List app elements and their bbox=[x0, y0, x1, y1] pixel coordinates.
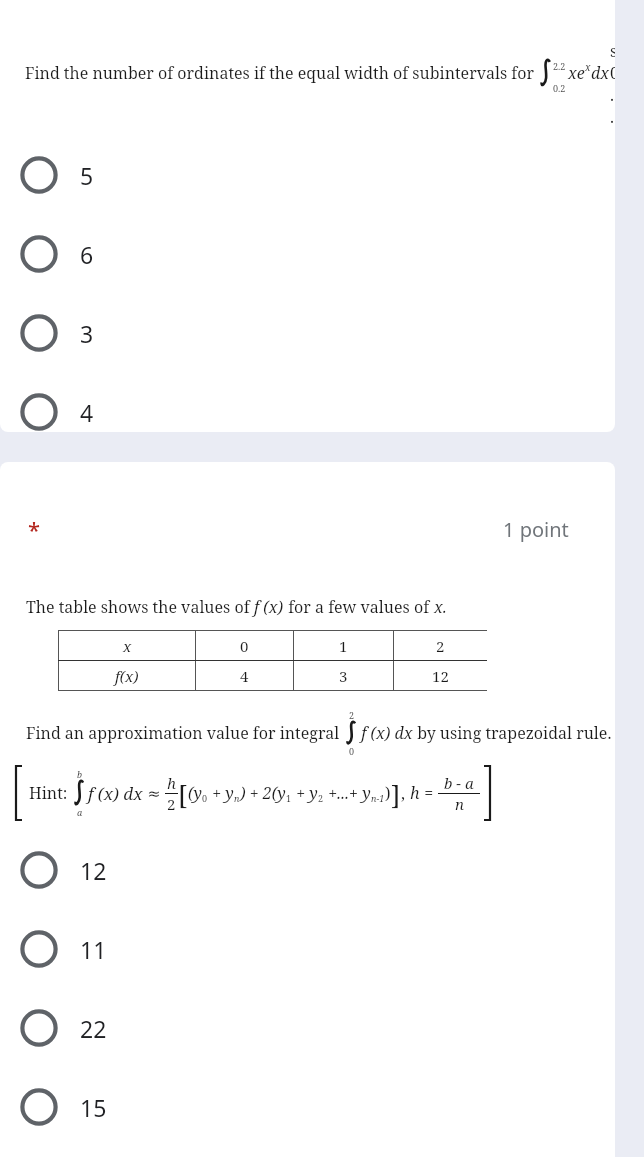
staticText: * bbox=[28, 514, 41, 544]
staticText: h bbox=[410, 782, 420, 804]
staticText: 1 bbox=[339, 636, 348, 656]
staticText: 1 bbox=[286, 792, 292, 804]
staticText: 11 bbox=[80, 934, 107, 965]
staticText: x bbox=[585, 60, 591, 74]
button[interactable]: 11 bbox=[0, 889, 615, 968]
staticText: dx bbox=[591, 62, 610, 84]
staticText: b - a bbox=[444, 773, 474, 793]
staticText: ) bbox=[385, 782, 391, 804]
staticText: 1 point bbox=[503, 516, 569, 543]
staticText: f (x) dx bbox=[357, 722, 413, 744]
staticText: ] bbox=[391, 776, 401, 811]
staticText: + y bbox=[292, 782, 318, 804]
staticText: 0 bbox=[202, 792, 208, 804]
staticText: 2.2 bbox=[553, 60, 566, 72]
staticText: 3 bbox=[80, 318, 94, 349]
staticText: f (x) dx bbox=[88, 782, 143, 805]
staticText: +...+ y bbox=[324, 782, 371, 804]
button[interactable]: 5 bbox=[0, 128, 615, 194]
staticText: is 0.5. bbox=[610, 18, 615, 128]
staticText: xe bbox=[568, 62, 585, 84]
staticText: n-1 bbox=[371, 792, 385, 804]
staticText: 2 bbox=[436, 636, 445, 656]
staticText: 12 bbox=[432, 666, 449, 686]
staticText: Find the number of ordinates if the equa… bbox=[25, 62, 534, 84]
staticText: 6 bbox=[80, 239, 94, 270]
staticText: 2 bbox=[167, 794, 176, 814]
staticText: 3 bbox=[339, 666, 348, 686]
staticText: 0 bbox=[349, 745, 355, 757]
staticText: 2 bbox=[318, 792, 324, 804]
staticText: for a few values of bbox=[284, 596, 434, 618]
staticText: The table shows the values of bbox=[26, 596, 254, 618]
button[interactable]: 3 bbox=[0, 273, 615, 352]
staticText: a bbox=[77, 806, 83, 818]
staticText: b bbox=[77, 768, 83, 780]
staticText: h bbox=[167, 773, 176, 793]
staticText: Find an approximation value for integral bbox=[26, 722, 340, 744]
staticText: 0.2 bbox=[553, 82, 566, 94]
staticText: Hint: bbox=[29, 782, 68, 804]
staticText: f(x) bbox=[115, 666, 139, 686]
staticText: n bbox=[234, 792, 240, 804]
staticText: 2 bbox=[349, 709, 355, 721]
staticText: f (x) bbox=[254, 596, 284, 618]
staticText: = bbox=[420, 782, 438, 804]
staticText: 12 bbox=[80, 855, 107, 886]
staticText: [ bbox=[178, 776, 188, 811]
staticText: n bbox=[455, 794, 464, 814]
staticText: x bbox=[123, 636, 132, 656]
staticText: 4 bbox=[80, 397, 94, 428]
button[interactable]: 4 bbox=[0, 352, 615, 431]
staticText: 22 bbox=[80, 1013, 107, 1044]
staticText: ) + 2(y bbox=[240, 782, 286, 804]
staticText: , bbox=[401, 782, 410, 804]
staticText: 15 bbox=[80, 1092, 107, 1123]
button[interactable]: 15 bbox=[0, 1047, 615, 1126]
staticText: 4 bbox=[240, 666, 249, 686]
button[interactable]: 12 bbox=[0, 821, 615, 889]
staticText: 0 bbox=[240, 636, 249, 656]
button[interactable]: 22 bbox=[0, 968, 615, 1047]
staticText: + y bbox=[208, 782, 234, 804]
staticText: (y bbox=[188, 782, 202, 804]
staticText: ≈ bbox=[143, 782, 165, 804]
staticText: x. bbox=[434, 596, 447, 618]
staticText: by using trapezoidal rule. bbox=[413, 722, 612, 744]
staticText: 5 bbox=[80, 160, 94, 191]
button[interactable]: 6 bbox=[0, 194, 615, 273]
